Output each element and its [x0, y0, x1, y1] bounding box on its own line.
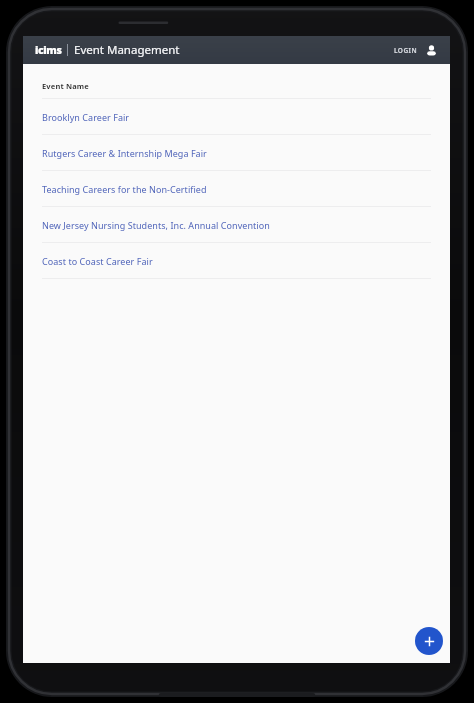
staticText: Event Management — [74, 42, 180, 58]
staticText: Rutgers Career & Internship Mega Fair — [42, 147, 207, 159]
button[interactable]: New Jersey Nursing Students, Inc. Annual… — [42, 207, 431, 242]
other: Account — [425, 44, 438, 57]
staticText: icims — [35, 43, 62, 57]
button[interactable]: Teaching Careers for the Non-Certified — [42, 171, 431, 206]
button[interactable]: Add event — [415, 627, 443, 655]
button[interactable]: LOGIN — [391, 42, 441, 59]
button[interactable]: icims — [35, 42, 180, 58]
staticText: Teaching Careers for the Non-Certified — [42, 183, 207, 195]
staticText: LOGIN — [394, 46, 418, 55]
staticText: Coast to Coast Career Fair — [42, 255, 153, 267]
staticText: Event Name — [42, 81, 89, 91]
staticText: Brooklyn Career Fair — [42, 111, 130, 123]
button[interactable]: Coast to Coast Career Fair — [42, 243, 431, 278]
staticText: New Jersey Nursing Students, Inc. Annual… — [42, 219, 270, 231]
button[interactable]: Rutgers Career & Internship Mega Fair — [42, 135, 431, 170]
button[interactable]: Brooklyn Career Fair — [42, 99, 431, 134]
